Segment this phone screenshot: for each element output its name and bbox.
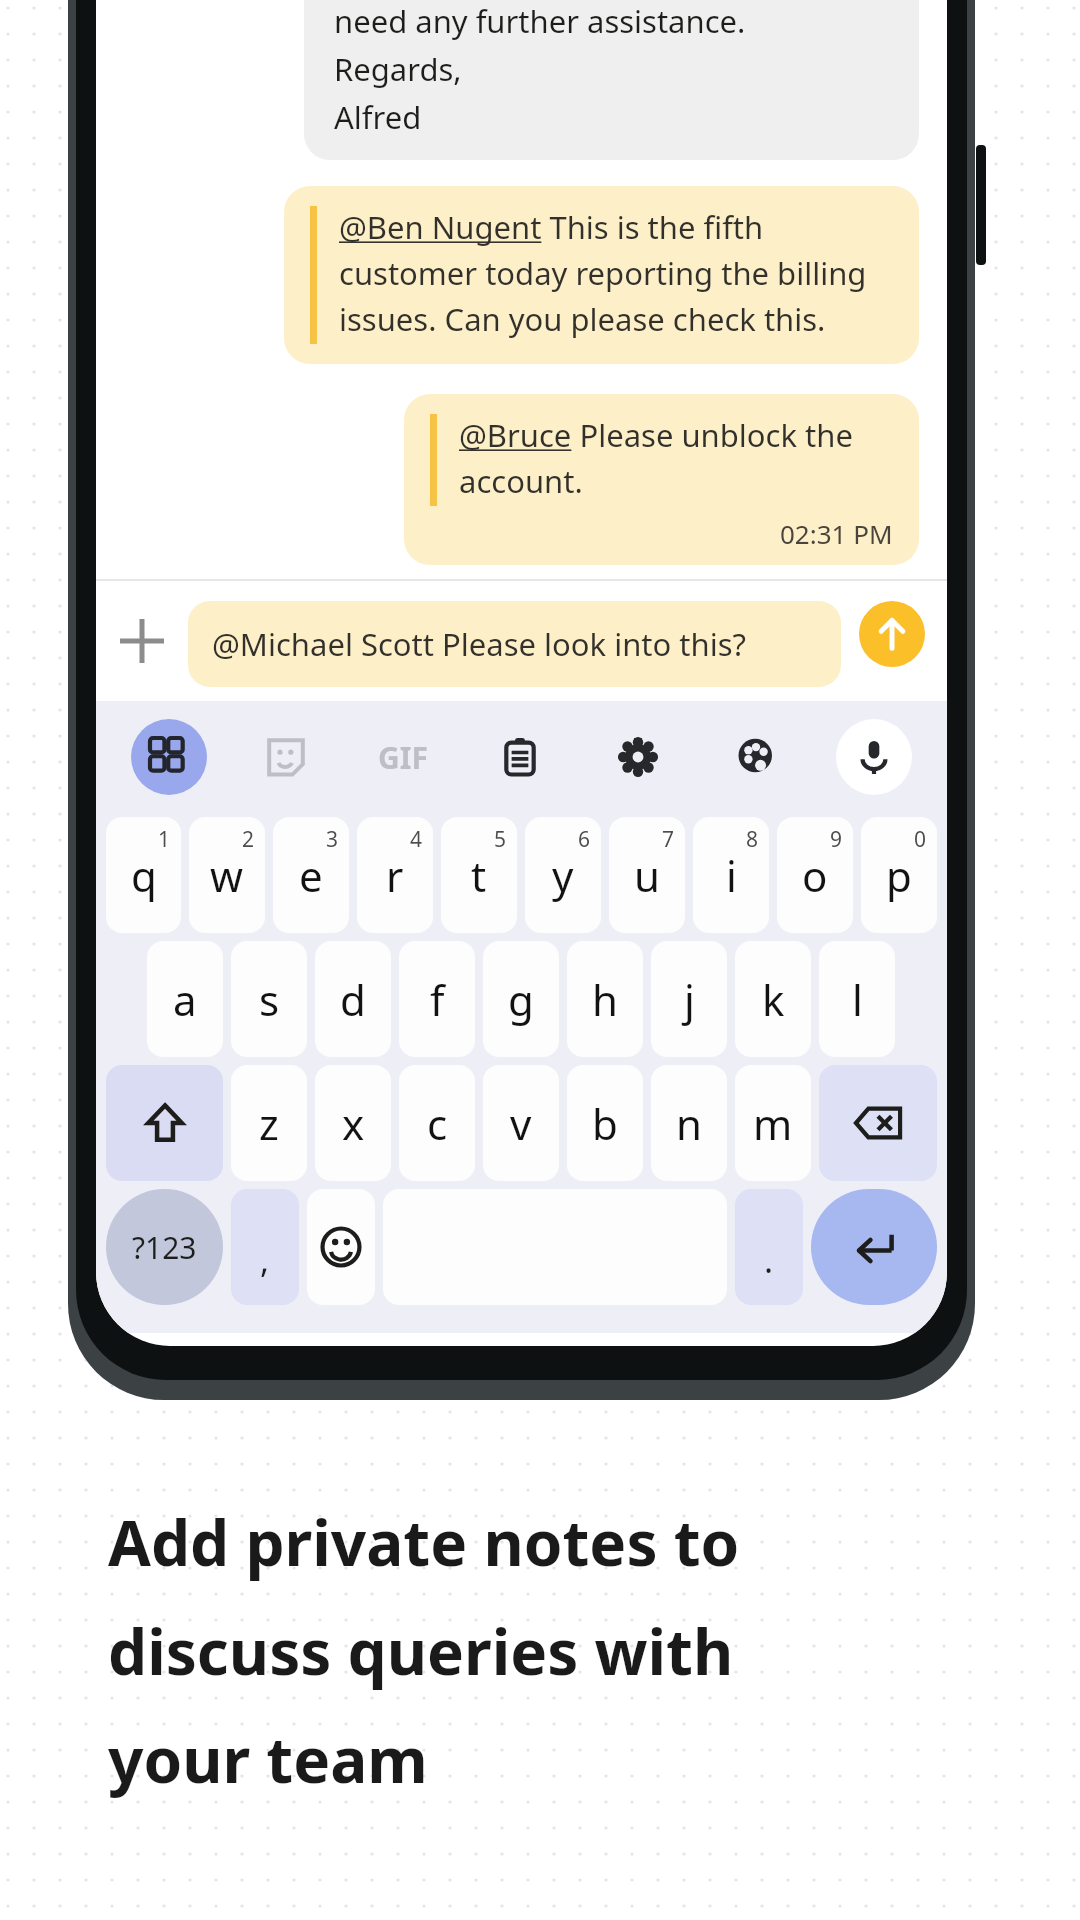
staticText: x [342,1095,365,1152]
button[interactable]: n [651,1065,727,1181]
staticText: a [173,971,197,1028]
button[interactable]: w [189,817,265,933]
button[interactable]: d [315,941,391,1057]
staticText: 7 [662,825,675,854]
button[interactable]: q [106,817,181,933]
staticText: b [592,1095,618,1152]
staticText: need any further assistance. Regards, Al… [334,0,746,138]
button[interactable]: x [315,1065,391,1181]
staticText: j [684,971,695,1028]
staticText: w [210,847,244,904]
staticText: h [592,971,618,1028]
staticText: GIF [378,737,428,778]
button[interactable]: Stickers [248,719,324,795]
staticText: 4 [410,825,423,854]
button[interactable]: h [567,941,643,1057]
button[interactable]: Settings [600,719,676,795]
button[interactable]: j [651,941,727,1057]
staticText: , [260,1237,270,1283]
staticText: ?123 [132,1227,197,1268]
button[interactable]: e [273,817,349,933]
staticText: 5 [494,825,507,854]
staticText: 3 [326,825,339,854]
button[interactable]: f [399,941,475,1057]
button[interactable]: t [441,817,517,933]
button[interactable]: Shift [106,1065,223,1181]
button[interactable]: b [567,1065,643,1181]
staticText: n [676,1095,702,1152]
button[interactable]: , [231,1189,299,1305]
staticText: 0 [914,825,927,854]
button[interactable]: u [609,817,685,933]
staticText: 2 [242,825,255,854]
button[interactable]: r [357,817,433,933]
staticText: m [753,1095,793,1152]
button[interactable]: g [483,941,559,1057]
button[interactable]: . [735,1189,803,1305]
button[interactable]: l [819,941,895,1057]
button[interactable]: Add attachment [96,595,188,687]
staticText: g [508,971,534,1028]
staticText: v [510,1095,532,1152]
staticText: i [726,847,737,904]
staticText: k [762,971,785,1028]
button[interactable]: GIF [365,719,441,795]
staticText: c [427,1095,448,1152]
staticText: @Bruce Please unblock the account. [459,414,897,502]
staticText: d [340,971,366,1028]
button[interactable]: k [735,941,811,1057]
staticText: 1 [158,825,171,854]
button[interactable]: z [231,1065,307,1181]
staticText: y [552,847,574,904]
staticText: f [430,971,445,1028]
staticText: l [852,971,863,1028]
staticText: @Michael Scott Please look into this? [212,623,747,665]
staticText: 8 [746,825,759,854]
staticText: r [386,847,404,904]
button[interactable]: Emoji [307,1189,375,1305]
staticText: 02:31 PM [780,516,893,551]
button[interactable]: a [147,941,223,1057]
button[interactable]: v [483,1065,559,1181]
button[interactable]: Backspace [819,1065,937,1181]
staticText: 6 [578,825,591,854]
staticText: t [471,847,487,904]
button[interactable]: p [861,817,937,933]
button[interactable]: Apps [131,719,207,795]
staticText: . [764,1237,774,1283]
staticText: e [299,847,323,904]
staticText: u [634,847,660,904]
button[interactable]: ?123 [106,1189,223,1305]
button[interactable]: y [525,817,601,933]
button[interactable]: Enter [811,1189,937,1305]
staticText: s [259,971,280,1028]
staticText: o [802,847,828,904]
staticText: @Ben Nugent This is the fifth customer t… [339,206,897,340]
button[interactable]: o [777,817,853,933]
button[interactable]: Theme [718,719,794,795]
button[interactable]: i [693,817,769,933]
staticText: Add private notes to discuss queries wit… [108,1500,740,1801]
button[interactable]: s [231,941,307,1057]
button[interactable]: Send [859,601,925,667]
button[interactable]: m [735,1065,811,1181]
staticText: z [259,1095,279,1152]
button[interactable]: c [399,1065,475,1181]
button[interactable]: Voice input [836,719,912,795]
button[interactable]: Clipboard [482,719,558,795]
button[interactable]: @Michael Scott Please look into this? [188,601,841,687]
staticText: q [131,847,157,904]
staticText: 9 [830,825,843,854]
staticText: p [886,847,912,904]
